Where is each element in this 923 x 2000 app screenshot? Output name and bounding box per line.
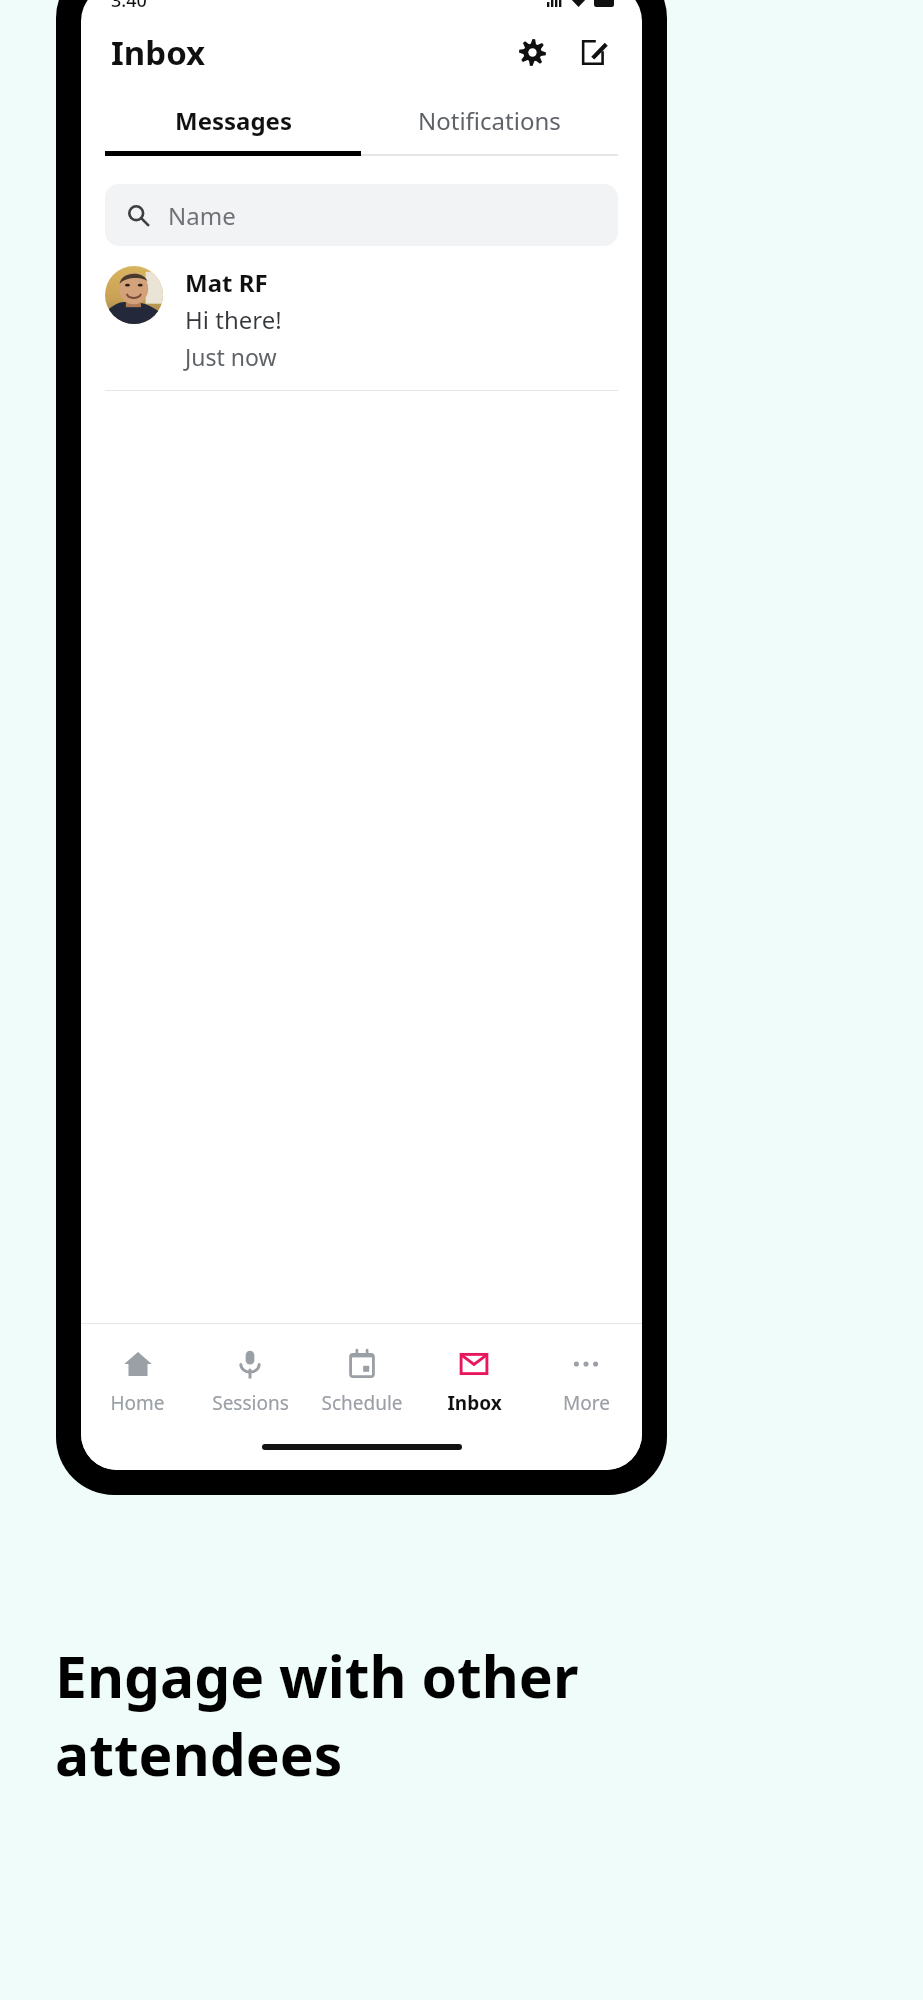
button[interactable]: Schedule xyxy=(306,1324,418,1436)
button[interactable]: Notifications xyxy=(361,89,618,151)
staticText: Inbox xyxy=(111,30,206,75)
button[interactable]: Mat RF xyxy=(81,246,642,390)
button[interactable]: Inbox xyxy=(418,1324,530,1436)
staticText: Sessions xyxy=(212,1390,289,1416)
button[interactable]: Home xyxy=(81,1324,194,1436)
staticText: Home xyxy=(110,1390,165,1416)
staticText: attendees xyxy=(55,1715,343,1793)
button[interactable]: Name xyxy=(105,184,618,246)
staticText: Just now xyxy=(185,341,277,372)
staticText: More xyxy=(563,1390,610,1416)
staticText: 3:40 xyxy=(111,0,147,13)
staticText: Notifications xyxy=(418,104,561,137)
button[interactable]: Compose message xyxy=(568,26,620,78)
staticText: Engage with other xyxy=(55,1637,579,1715)
button[interactable]: Messages xyxy=(105,89,361,151)
staticText: Messages xyxy=(175,104,292,137)
staticText: Hi there! xyxy=(185,303,282,336)
staticText: Name xyxy=(168,199,236,232)
button[interactable]: Settings xyxy=(506,26,558,78)
button[interactable]: More xyxy=(530,1324,642,1436)
staticText: Mat RF xyxy=(185,266,268,299)
button[interactable]: Sessions xyxy=(194,1324,306,1436)
staticText: Inbox xyxy=(447,1390,502,1416)
staticText: Schedule xyxy=(321,1390,403,1416)
